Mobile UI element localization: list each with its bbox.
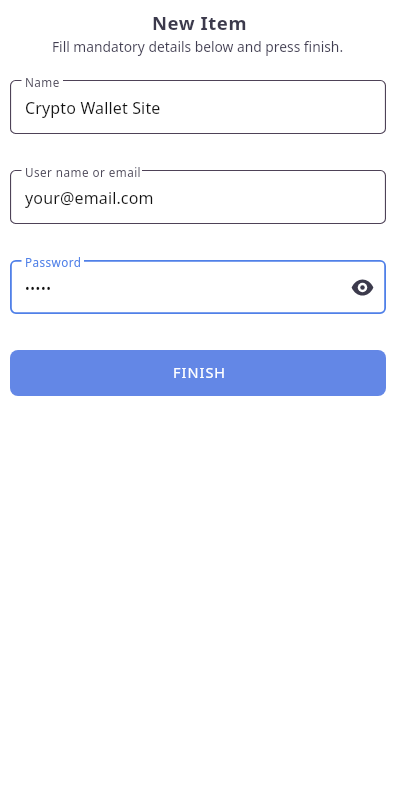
staticText: Password — [25, 254, 82, 270]
button[interactable]: ••••• — [10, 260, 386, 314]
staticText: your@email.com — [25, 187, 154, 209]
button[interactable]: Show password — [350, 275, 375, 300]
button[interactable]: Crypto Wallet Site — [10, 80, 386, 134]
staticText: New Item — [2, 10, 395, 35]
staticText: User name or email — [25, 164, 142, 180]
staticText: FINISH — [173, 362, 227, 382]
staticText: Name — [25, 74, 60, 90]
staticText: ••••• — [25, 280, 52, 297]
staticText: Fill mandatory details below and press f… — [0, 37, 395, 56]
staticText: Crypto Wallet Site — [25, 97, 161, 119]
button[interactable]: your@email.com — [10, 170, 386, 224]
button[interactable]: FINISH — [10, 350, 386, 396]
